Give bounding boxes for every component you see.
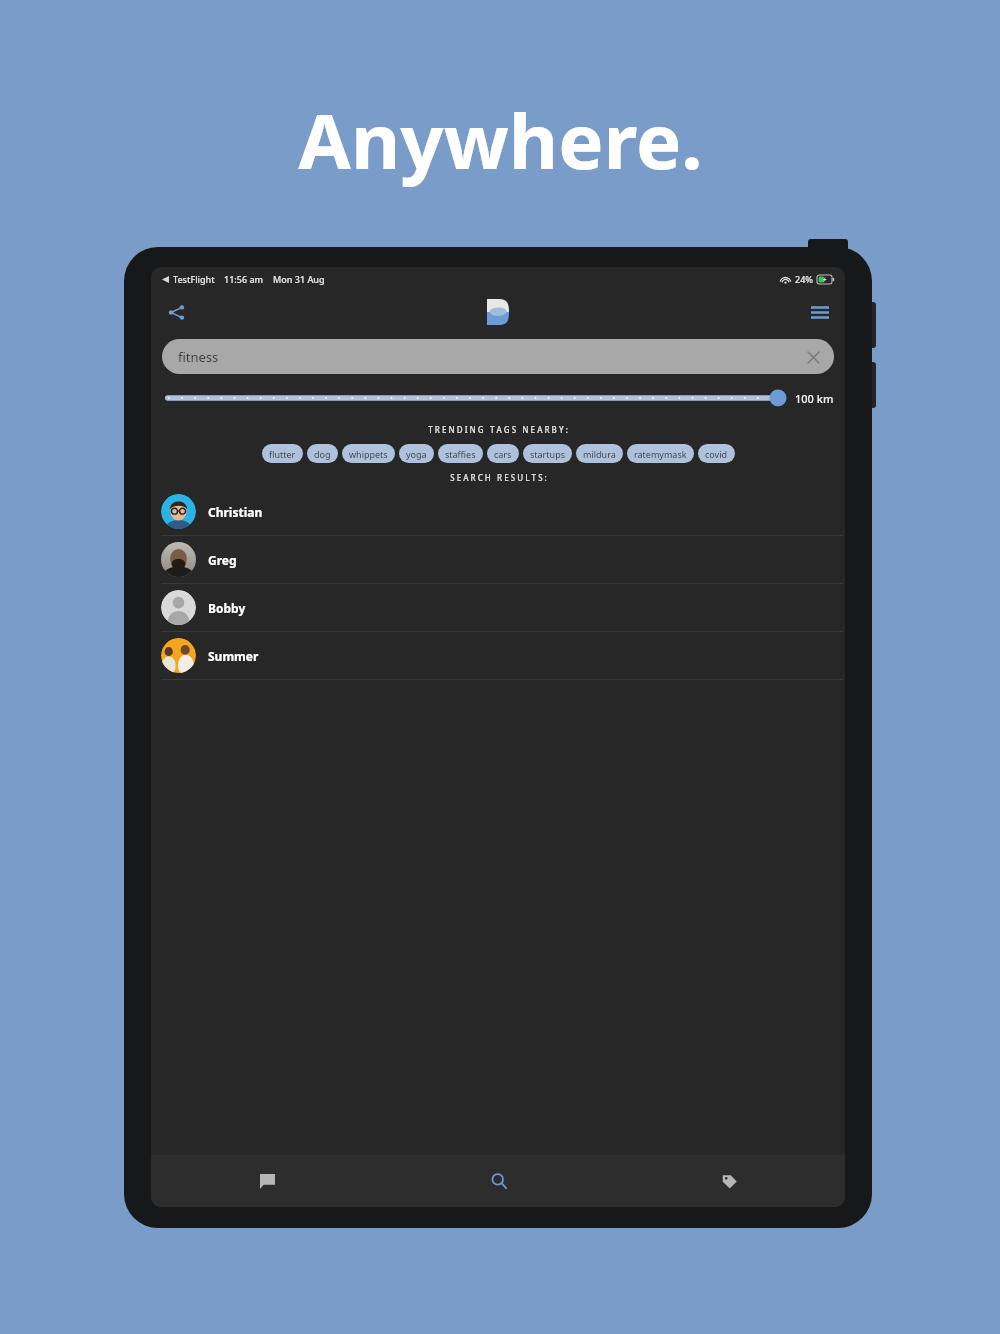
button[interactable]: dog <box>307 444 338 463</box>
button[interactable]: Tags <box>614 1155 845 1207</box>
staticText: ratemymask <box>634 448 687 460</box>
staticText: dog <box>314 448 331 460</box>
staticText: S E A R C H R E S U L T S : <box>450 472 547 483</box>
staticText: startups <box>530 448 565 460</box>
staticText: yoga <box>406 448 427 460</box>
button[interactable]: ratemymask <box>627 444 694 463</box>
staticText: 11:56 am <box>224 273 264 285</box>
button[interactable]: staffies <box>438 444 483 463</box>
button[interactable]: cars <box>487 444 519 463</box>
button[interactable]: mildura <box>576 444 623 463</box>
staticText: Summer <box>208 648 259 664</box>
staticText: Christian <box>208 504 263 520</box>
button[interactable]: Christian <box>151 488 845 536</box>
button[interactable]: fitness <box>162 339 834 374</box>
button[interactable]: Menu <box>802 294 838 330</box>
button[interactable]: Share <box>158 294 194 330</box>
staticText: Anywhere. <box>298 88 703 192</box>
button[interactable]: Bobby <box>151 584 845 632</box>
button[interactable]: yoga <box>399 444 434 463</box>
staticText: Greg <box>208 552 237 568</box>
button[interactable]: Summer <box>151 632 845 680</box>
staticText: Mon 31 Aug <box>273 273 325 285</box>
staticText: 24% <box>795 273 813 285</box>
staticText: flutter <box>269 448 296 460</box>
staticText: covid <box>705 448 728 460</box>
button[interactable]: startups <box>523 444 572 463</box>
button[interactable]: Distance slider <box>165 388 787 408</box>
staticText: T R E N D I N G T A G S N E A R B Y : <box>428 424 568 435</box>
staticText: whippets <box>349 448 388 460</box>
staticText: fitness <box>178 348 219 366</box>
button[interactable]: Greg <box>151 536 845 584</box>
staticText: cars <box>494 448 512 460</box>
button[interactable]: covid <box>698 444 735 463</box>
button[interactable]: flutter <box>262 444 303 463</box>
button[interactable]: Search <box>383 1155 614 1207</box>
staticText: 100 km <box>795 391 834 406</box>
button[interactable]: Clear search <box>802 346 824 368</box>
staticText: staffies <box>445 448 476 460</box>
button[interactable]: whippets <box>342 444 395 463</box>
staticText: mildura <box>583 448 616 460</box>
staticText: TestFlight <box>173 273 215 285</box>
staticText: Bobby <box>208 600 246 616</box>
button[interactable]: Messages <box>151 1155 383 1207</box>
